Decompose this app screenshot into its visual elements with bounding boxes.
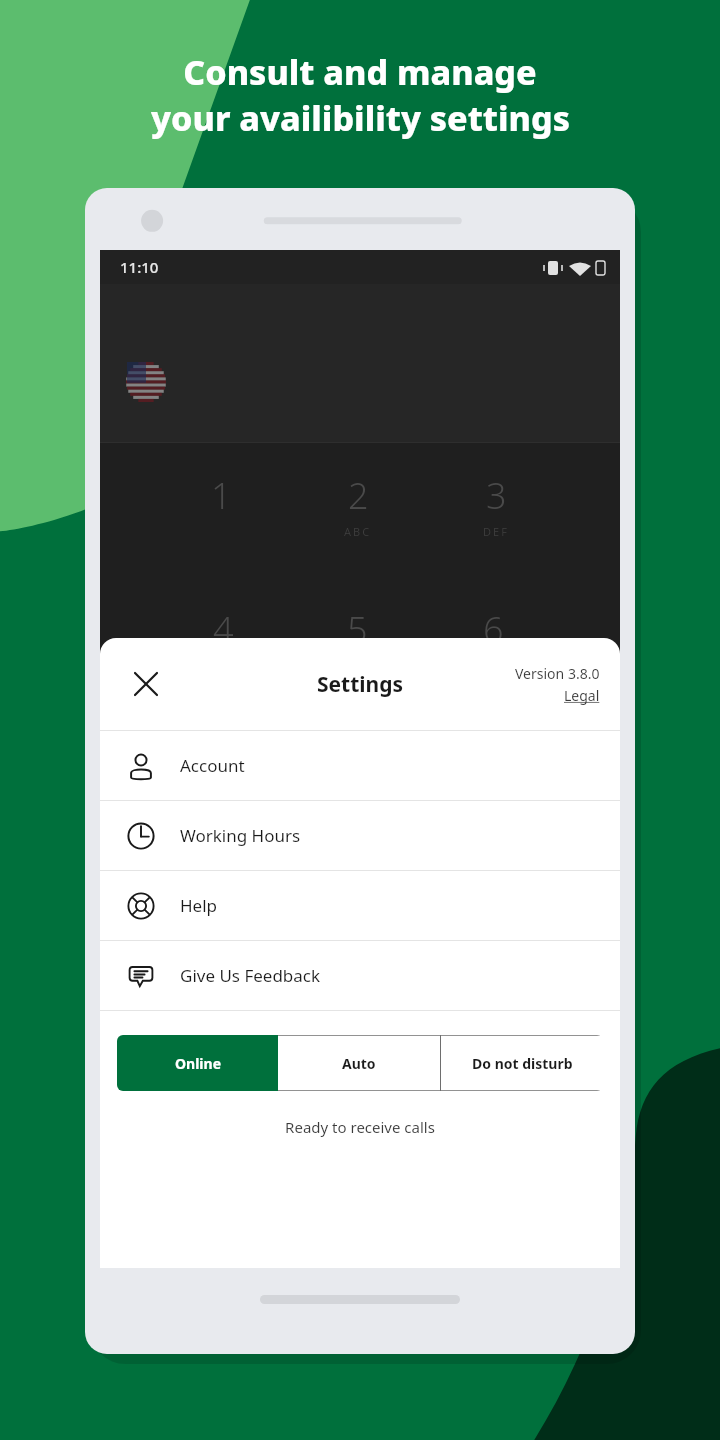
staticText: 1 — [211, 471, 232, 520]
staticText: Help — [180, 894, 218, 917]
staticText: 3 — [486, 471, 507, 520]
staticText: DEF — [483, 524, 509, 539]
staticText: 5 — [347, 605, 368, 654]
staticText: Auto — [342, 1054, 376, 1073]
button[interactable]: Auto — [278, 1035, 440, 1091]
button[interactable]: Help — [100, 871, 620, 940]
staticText: 11:10 — [120, 257, 159, 277]
staticText: ABC — [344, 524, 372, 539]
button[interactable]: Close — [124, 662, 168, 706]
button[interactable]: Give Us Feedback — [100, 941, 620, 1010]
staticText: Do not disturb — [472, 1054, 573, 1073]
staticText: Give Us Feedback — [180, 964, 321, 987]
staticText: 4 — [213, 605, 234, 654]
staticText: Version 3.8.0 — [515, 664, 600, 683]
staticText: Online — [175, 1054, 221, 1073]
staticText: Settings — [317, 670, 404, 699]
button[interactable]: Working Hours — [100, 801, 620, 870]
staticText: Working Hours — [180, 824, 301, 847]
button[interactable]: Do not disturb — [441, 1035, 603, 1091]
staticText: Ready to receive calls — [100, 1117, 620, 1137]
staticText: your availibility settings — [151, 95, 570, 141]
staticText: 2 — [348, 471, 369, 520]
button[interactable]: Account — [100, 731, 620, 800]
staticText: Account — [180, 754, 245, 777]
staticText: 6 — [483, 605, 504, 654]
button[interactable]: Online — [117, 1035, 278, 1091]
button[interactable]: Legal — [564, 686, 600, 705]
staticText: Consult and manage — [183, 49, 537, 95]
